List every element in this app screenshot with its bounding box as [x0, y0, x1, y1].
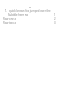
button[interactable]: Row two a	[3, 21, 56, 25]
staticText: 1.	[5, 9, 8, 13]
staticText: Row two a	[3, 21, 16, 25]
staticText: quick brown fox jumped over the	[9, 9, 51, 13]
staticText: Subtitle here no	[8, 13, 29, 17]
staticText: 2	[54, 17, 56, 21]
button[interactable]: Row one a	[3, 17, 56, 21]
staticText: 1	[54, 13, 56, 17]
staticText: Row one a	[3, 17, 17, 21]
staticText: 3	[54, 21, 56, 25]
button[interactable]: Subtitle here no	[8, 13, 56, 17]
